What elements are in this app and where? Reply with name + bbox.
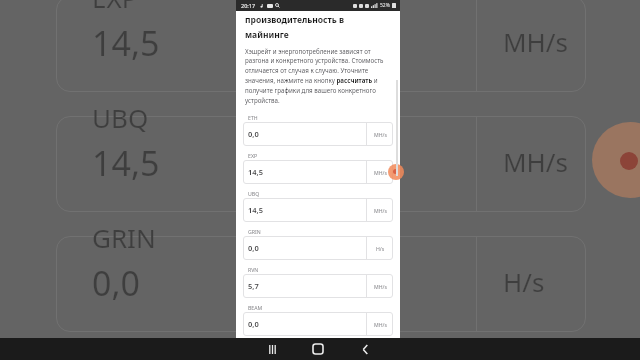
staticText: MH/s xyxy=(374,321,387,328)
staticText: производительность в xyxy=(245,14,345,26)
staticText: 11674,50 xyxy=(248,350,366,360)
button[interactable]: Цена xyxy=(243,339,393,360)
button[interactable]: Рассчитать xyxy=(388,164,404,180)
staticText: MH/s xyxy=(374,131,387,138)
staticText: 14,5 xyxy=(92,140,160,186)
button[interactable]: BEAM xyxy=(243,301,393,339)
staticText: 14,5 xyxy=(92,20,160,66)
staticText: MH/s xyxy=(374,283,387,290)
button[interactable]: EXP xyxy=(243,149,393,187)
staticText: 20:17 xyxy=(241,2,256,9)
staticText: 0,0 xyxy=(248,243,366,253)
staticText: 52% xyxy=(380,2,390,9)
staticText: ETH xyxy=(248,114,258,121)
button[interactable]: UBQ xyxy=(243,187,393,225)
staticText: 0,0 xyxy=(248,129,366,139)
button[interactable]: Recents xyxy=(261,338,283,360)
staticText: Хэшрейт и энергопотребление зависят от р… xyxy=(245,47,391,105)
staticText: RVN xyxy=(248,266,259,273)
button[interactable]: RVN xyxy=(243,263,393,301)
staticText: MH/s xyxy=(503,144,568,179)
staticText: H/s xyxy=(376,245,385,252)
staticText: 0,0 xyxy=(92,260,141,306)
staticText: MH/s xyxy=(374,169,387,176)
staticText: UBQ xyxy=(92,100,149,135)
staticText: 5,7 xyxy=(248,281,366,291)
button[interactable]: Back xyxy=(354,338,376,360)
button[interactable]: ETH xyxy=(243,111,393,149)
button[interactable]: Home xyxy=(307,338,329,360)
staticText: GRIN xyxy=(92,220,156,255)
staticText: MH/s xyxy=(374,207,387,214)
staticText: 14,5 xyxy=(248,205,366,215)
staticText: BEAM xyxy=(248,304,263,311)
staticText: EXP xyxy=(248,152,258,159)
staticText: майнинге xyxy=(245,29,289,41)
button[interactable]: GRIN xyxy=(243,225,393,263)
staticText: EXP xyxy=(92,0,138,15)
staticText: MH/s xyxy=(503,24,568,59)
staticText: 0,0 xyxy=(248,319,366,329)
staticText: GRIN xyxy=(248,228,261,235)
staticText: 14,5 xyxy=(248,167,366,177)
staticText: H/s xyxy=(503,264,545,299)
staticText: UBQ xyxy=(248,190,260,197)
